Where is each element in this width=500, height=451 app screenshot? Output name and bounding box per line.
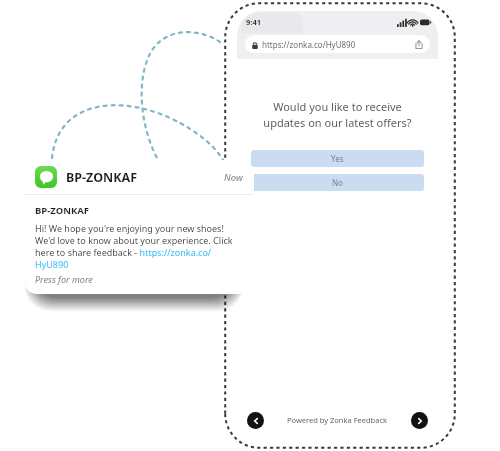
staticText: Would you like to receive updates on our… bbox=[263, 99, 412, 130]
staticText: Press for more bbox=[35, 273, 93, 285]
other: Share bbox=[415, 40, 423, 49]
staticText: Powered by Zonka Feedback bbox=[287, 415, 388, 425]
staticText: https://zonka.co/HyU890 bbox=[262, 39, 356, 50]
button[interactable]: https://zonka.co/HyU890 bbox=[245, 35, 430, 53]
staticText: Yes bbox=[331, 153, 344, 164]
button[interactable]: Yes bbox=[251, 150, 424, 167]
staticText: Now bbox=[224, 171, 243, 184]
button[interactable]: No bbox=[251, 174, 424, 191]
staticText: 9:41 bbox=[246, 17, 261, 27]
button[interactable]: Previous bbox=[247, 412, 264, 429]
staticText: Hi! We hope you're enjoying your new sho… bbox=[35, 222, 244, 270]
button[interactable]: Messages bbox=[24, 160, 254, 294]
button[interactable]: Next bbox=[411, 412, 428, 429]
staticText: No bbox=[332, 177, 343, 188]
other: Messages bbox=[35, 166, 57, 188]
staticText: BP-ZONKAF bbox=[35, 204, 89, 217]
staticText: BP-ZONKAF bbox=[66, 169, 138, 186]
